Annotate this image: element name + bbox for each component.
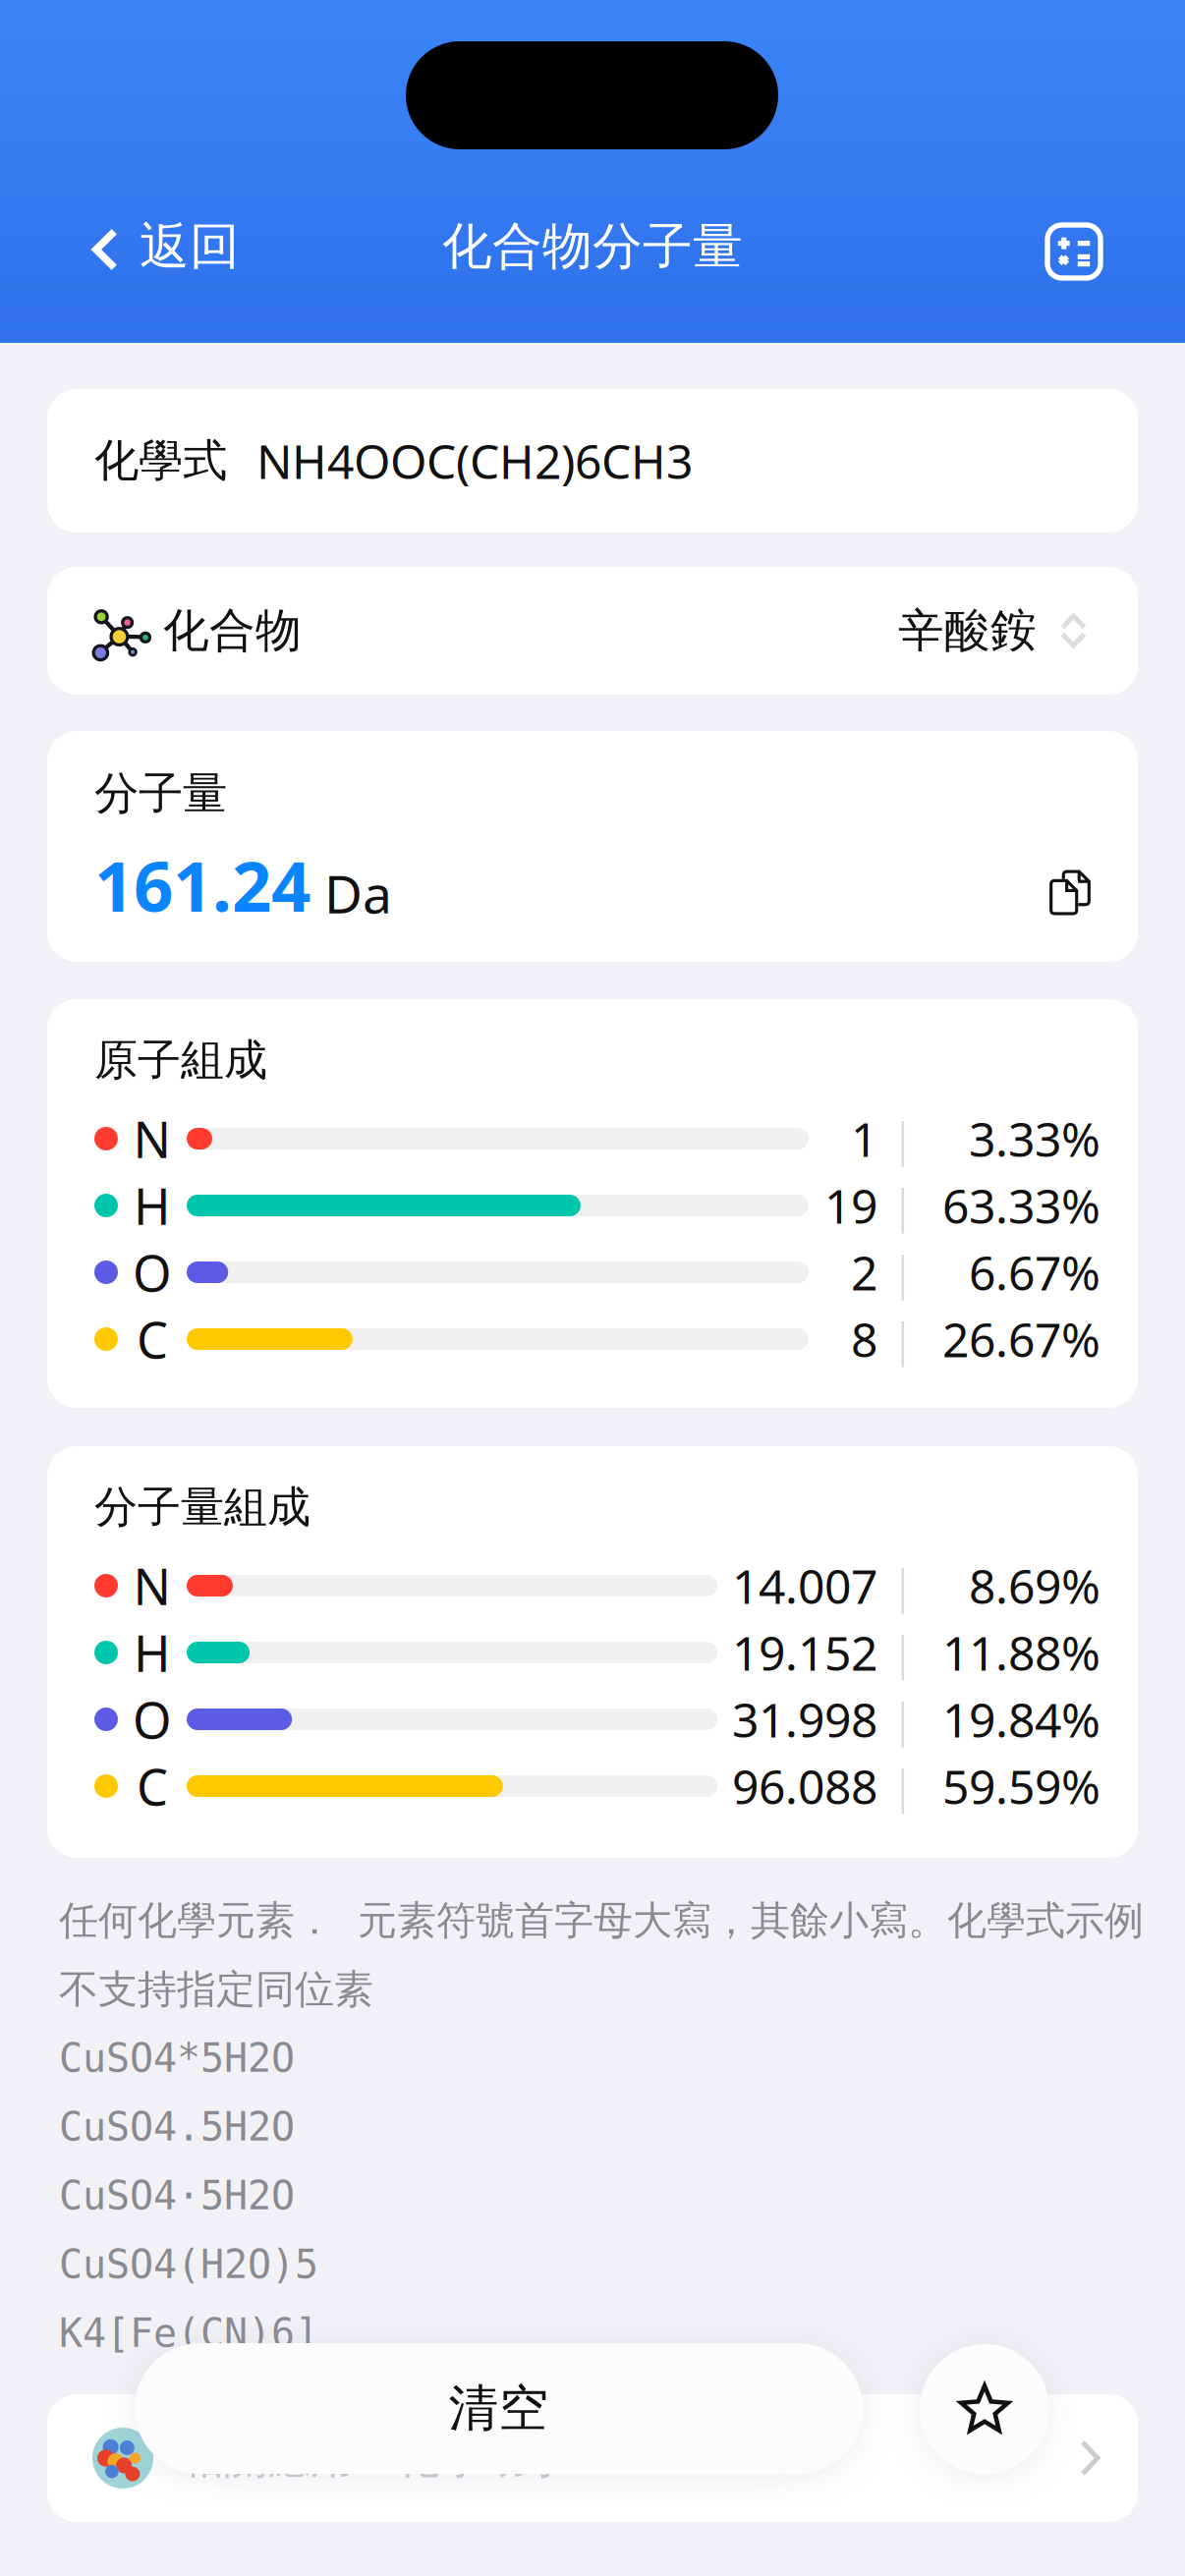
staticText: | bbox=[891, 1757, 915, 1816]
button[interactable]: 返回 bbox=[69, 197, 263, 296]
button[interactable]: 清空 bbox=[135, 2343, 863, 2474]
staticText: 分子量 bbox=[94, 766, 227, 821]
staticText: 化合物 bbox=[163, 603, 302, 659]
staticText: 96.088 bbox=[732, 1755, 877, 1817]
staticText: 6.67% bbox=[969, 1241, 1100, 1304]
button[interactable]: 化合物 bbox=[47, 567, 1138, 695]
staticText: 3.33% bbox=[969, 1107, 1100, 1170]
staticText: 8.69% bbox=[969, 1554, 1100, 1617]
staticText: K4[Fe(CN)6] bbox=[59, 2311, 318, 2356]
staticText: O bbox=[133, 1686, 172, 1752]
staticText: H bbox=[134, 1619, 171, 1686]
staticText: H bbox=[134, 1172, 171, 1239]
button[interactable]: Copy bbox=[1028, 808, 1106, 889]
staticText: 26.67% bbox=[942, 1308, 1100, 1370]
staticText: 任何化學元素． 元素符號首字母大寫，其餘小寫。化學式示例 bbox=[59, 1897, 1144, 1945]
staticText: NH4OOC(CH2)6CH3 bbox=[256, 429, 693, 492]
button[interactable]: 相關應用：化學助手 bbox=[47, 2394, 1138, 2522]
staticText: 辛酸銨 bbox=[898, 603, 1037, 659]
staticText: 8 bbox=[851, 1308, 877, 1370]
staticText: Da bbox=[324, 858, 392, 928]
staticText: 19.152 bbox=[732, 1621, 877, 1684]
button[interactable]: Favorite bbox=[920, 2344, 1049, 2474]
staticText: | bbox=[891, 1109, 915, 1168]
staticText: | bbox=[891, 1556, 915, 1615]
staticText: C bbox=[137, 1753, 168, 1819]
staticText: | bbox=[891, 1623, 915, 1682]
staticText: 返回 bbox=[140, 216, 240, 277]
staticText: CuSO4.5H2O bbox=[59, 2105, 295, 2149]
staticText: 不支持指定同位素 bbox=[59, 1965, 373, 2014]
staticText: CuSO4(H2O)5 bbox=[59, 2242, 318, 2287]
staticText: 2 bbox=[851, 1241, 877, 1304]
staticText: 63.33% bbox=[942, 1174, 1100, 1237]
staticText: N bbox=[133, 1553, 171, 1619]
staticText: 11.88% bbox=[942, 1621, 1100, 1684]
staticText: 14.007 bbox=[732, 1554, 877, 1617]
staticText: 19 bbox=[824, 1174, 877, 1237]
staticText: 59.59% bbox=[942, 1755, 1100, 1817]
staticText: | bbox=[891, 1176, 915, 1235]
staticText: 19.84% bbox=[942, 1688, 1100, 1751]
staticText: 原子組成 bbox=[94, 1034, 267, 1087]
staticText: 31.998 bbox=[732, 1688, 877, 1751]
staticText: | bbox=[891, 1310, 915, 1369]
button[interactable]: Calculator bbox=[1025, 197, 1123, 296]
staticText: 清空 bbox=[449, 2378, 549, 2439]
staticText: | bbox=[891, 1690, 915, 1749]
staticText: 化學式 bbox=[94, 433, 227, 488]
staticText: 化合物分子量 bbox=[442, 216, 743, 277]
staticText: | bbox=[891, 1243, 915, 1302]
staticText: 1 bbox=[851, 1107, 877, 1170]
staticText: 161.24 bbox=[94, 839, 310, 931]
staticText: CuSO4·5H2O bbox=[59, 2173, 295, 2218]
staticText: 分子量組成 bbox=[94, 1481, 310, 1534]
staticText: N bbox=[133, 1106, 171, 1172]
staticText: CuSO4*5H2O bbox=[59, 2036, 295, 2081]
staticText: 相關應用：化學助手 bbox=[181, 2432, 570, 2485]
staticText: O bbox=[133, 1239, 172, 1305]
staticText: C bbox=[137, 1306, 168, 1372]
